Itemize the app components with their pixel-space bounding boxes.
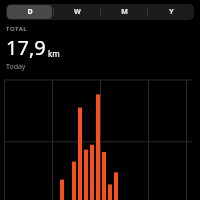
staticText: km: [48, 48, 60, 59]
staticText: D: [27, 7, 33, 17]
staticText: Y: [169, 7, 174, 17]
staticText: 17,9: [6, 34, 46, 61]
button[interactable]: M: [102, 5, 146, 19]
staticText: TOTAL: [6, 25, 28, 33]
button[interactable]: W: [55, 5, 99, 19]
button[interactable]: D: [7, 5, 52, 19]
staticText: Today: [6, 62, 26, 72]
staticText: W: [74, 7, 81, 17]
button[interactable]: Y: [149, 5, 193, 19]
staticText: M: [121, 7, 128, 17]
